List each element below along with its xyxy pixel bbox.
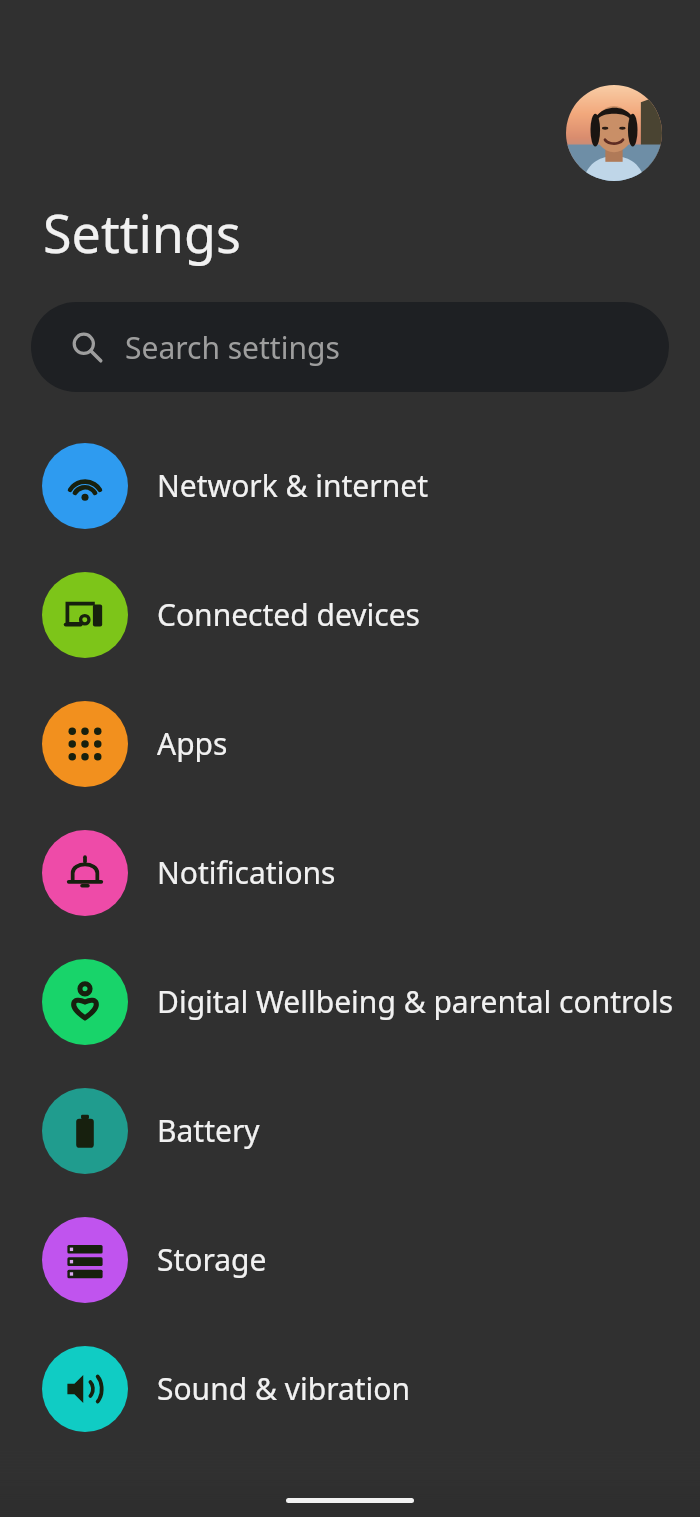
staticText: Apps bbox=[157, 723, 228, 764]
staticText: Search settings bbox=[125, 327, 340, 368]
button[interactable]: Sound & vibration bbox=[0, 1324, 700, 1453]
staticText: Settings bbox=[43, 197, 241, 268]
staticText: Network & internet bbox=[157, 465, 428, 506]
staticText: Notifications bbox=[157, 852, 336, 893]
staticText: Storage bbox=[157, 1239, 267, 1280]
button[interactable]: Search settings bbox=[31, 302, 669, 392]
button[interactable]: Apps bbox=[0, 679, 700, 808]
button[interactable]: Digital Wellbeing & parental controls bbox=[0, 937, 700, 1066]
staticText: Sound & vibration bbox=[157, 1368, 411, 1409]
button[interactable]: Storage bbox=[0, 1195, 700, 1324]
button[interactable]: Connected devices bbox=[0, 550, 700, 679]
button[interactable]: Battery bbox=[0, 1066, 700, 1195]
button[interactable]: Account profile bbox=[566, 85, 662, 181]
staticText: Digital Wellbeing & parental controls bbox=[157, 981, 674, 1022]
staticText: Connected devices bbox=[157, 594, 420, 635]
button[interactable]: Notifications bbox=[0, 808, 700, 937]
staticText: Battery bbox=[157, 1110, 260, 1151]
button[interactable]: Network & internet bbox=[0, 421, 700, 550]
